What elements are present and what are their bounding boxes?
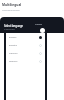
button[interactable]: English: [6, 33, 45, 41]
button[interactable]: Français: [6, 49, 45, 57]
staticText: Translate anything: [2, 9, 20, 12]
staticText: Español: [9, 44, 18, 47]
staticText: Deutsch: [9, 60, 18, 63]
staticText: 4 languages: [4, 28, 15, 31]
staticText: Français: [9, 52, 18, 55]
button[interactable]: Español: [6, 41, 45, 49]
staticText: Multilingual: [2, 3, 22, 7]
staticText: English: [9, 36, 17, 39]
staticText: Select language: [4, 24, 23, 27]
button[interactable]: Add language: [40, 28, 45, 33]
staticText: Change: [35, 23, 42, 26]
button[interactable]: Deutsch: [6, 57, 45, 65]
